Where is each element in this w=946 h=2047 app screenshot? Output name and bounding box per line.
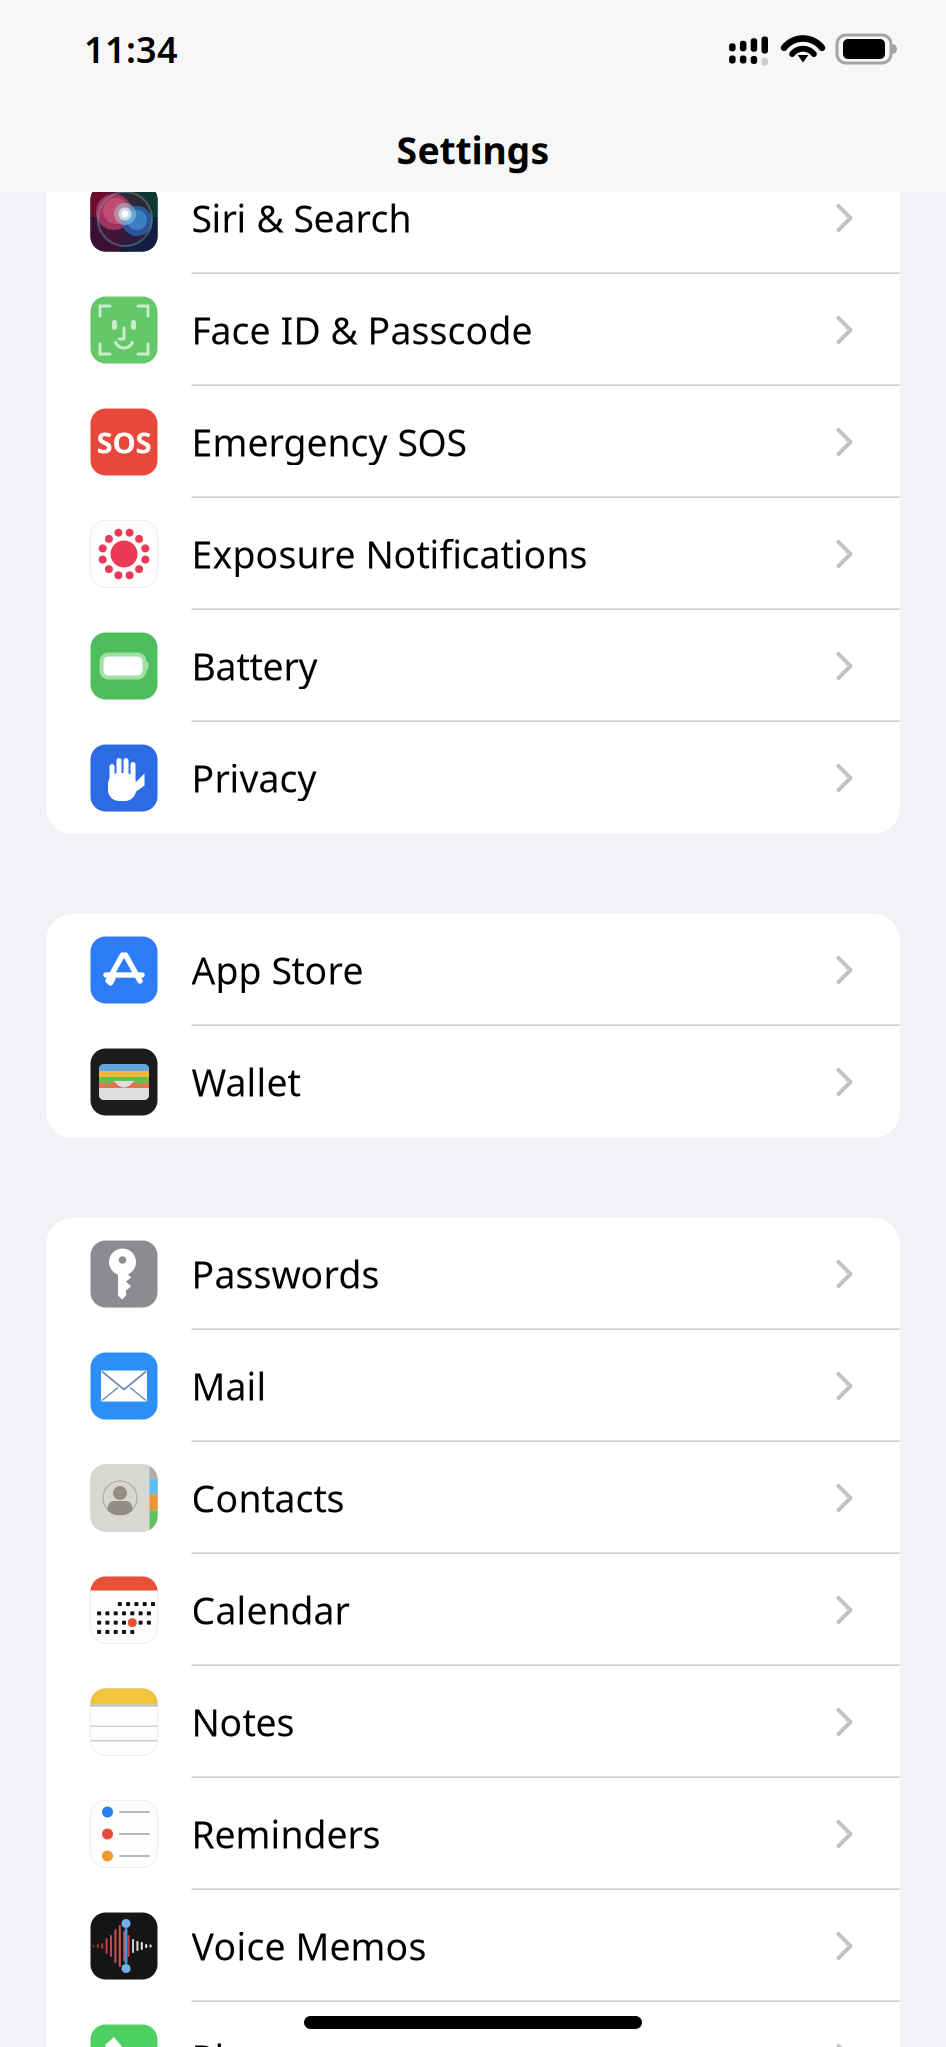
button[interactable]: Mail [46, 1330, 899, 1442]
staticText: Contacts [191, 1473, 344, 1523]
staticText: Reminders [191, 1809, 380, 1859]
button[interactable]: Notes [46, 1666, 899, 1778]
button[interactable]: Wallet [46, 1026, 899, 1138]
staticText: SOS [96, 422, 151, 461]
staticText: Voice Memos [191, 1921, 426, 1971]
button[interactable]: Exposure Notifications [46, 498, 899, 610]
staticText: Passwords [191, 1249, 379, 1299]
button[interactable]: Contacts [46, 1442, 899, 1554]
staticText: Siri & Search [191, 193, 411, 243]
button[interactable]: App Store [46, 914, 899, 1026]
button[interactable]: Reminders [46, 1778, 899, 1890]
button[interactable]: Siri & Search [46, 162, 899, 274]
staticText: 11:34 [84, 25, 178, 73]
staticText: Notes [191, 1697, 294, 1747]
staticText: Emergency SOS [191, 417, 466, 467]
staticText: Phone [191, 2033, 304, 2047]
staticText: Mail [191, 1361, 266, 1411]
button[interactable]: SOS [46, 386, 899, 498]
staticText: Battery [191, 641, 317, 691]
staticText: Face ID & Passcode [191, 305, 532, 355]
staticText: Settings [396, 125, 549, 175]
button[interactable]: Phone [46, 2002, 899, 2047]
staticText: Exposure Notifications [191, 529, 587, 579]
button[interactable]: Privacy [46, 722, 899, 834]
staticText: Wallet [191, 1057, 300, 1107]
button[interactable]: Battery [46, 610, 899, 722]
staticText: App Store [191, 945, 363, 995]
button[interactable]: Calendar [46, 1554, 899, 1666]
button[interactable]: Voice Memos [46, 1890, 899, 2002]
staticText: Privacy [191, 753, 316, 803]
button[interactable]: Passwords [46, 1218, 899, 1330]
button[interactable]: Face ID & Passcode [46, 274, 899, 386]
staticText: Calendar [191, 1585, 349, 1635]
